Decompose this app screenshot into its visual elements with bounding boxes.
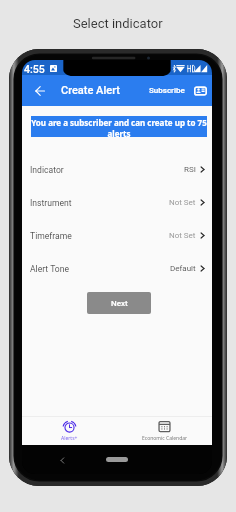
button[interactable]: Alert Tone [22, 252, 212, 285]
button[interactable]: Back [27, 75, 53, 106]
button[interactable]: Economic Calendar [117, 417, 212, 445]
button[interactable]: Next [87, 292, 151, 314]
button[interactable]: Timeframe [22, 219, 212, 252]
staticText: Instrument [30, 198, 72, 208]
staticText: Alert Tone [30, 264, 70, 274]
staticText: Default [170, 264, 196, 273]
staticText: Create Alert [61, 84, 120, 97]
button[interactable]: Account [191, 75, 209, 106]
staticText: Not Set [169, 198, 196, 207]
button[interactable]: Subscribe [146, 79, 188, 102]
staticText: 4:55 [24, 63, 45, 75]
button[interactable]: Alerts+ [22, 417, 117, 445]
button[interactable]: Back [55, 453, 69, 467]
staticText: Alerts+ [61, 435, 78, 442]
staticText: You are a subscriber and can create up t… [31, 117, 207, 138]
staticText: Not Set [169, 231, 196, 240]
button[interactable]: Indicator [22, 153, 212, 186]
button[interactable]: Home [106, 457, 128, 462]
staticText: Subscribe [149, 86, 185, 95]
staticText: RSI [184, 165, 196, 174]
staticText: Select indicator [73, 16, 163, 31]
button[interactable]: Instrument [22, 186, 212, 219]
staticText: Economic Calendar [142, 435, 188, 442]
staticText: Next [111, 299, 128, 308]
staticText: Indicator [30, 165, 64, 175]
button[interactable]: You are a subscriber and can create up t… [31, 116, 207, 137]
staticText: Timeframe [30, 231, 72, 241]
